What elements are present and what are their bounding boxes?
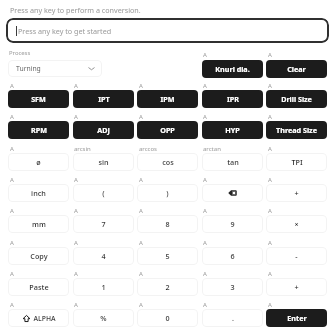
staticText: A (10, 301, 14, 309)
staticText: ADJ (97, 125, 110, 135)
staticText: A (268, 51, 272, 59)
button[interactable]: 4 (73, 247, 134, 265)
button[interactable]: 8 (137, 215, 198, 233)
button[interactable]: 0 (137, 309, 198, 327)
button[interactable]: + (266, 278, 327, 296)
button[interactable]: × (266, 215, 327, 233)
staticText: mm (32, 219, 46, 229)
button[interactable]: ( (73, 184, 134, 202)
staticText: A (203, 176, 207, 184)
staticText: A (74, 207, 78, 215)
staticText: . (232, 313, 234, 323)
button[interactable]: 1 (73, 278, 134, 296)
button[interactable]: ALPHA (8, 309, 69, 327)
staticText: Press any key to get started (18, 26, 112, 36)
button[interactable]: Backspace (202, 184, 263, 202)
button[interactable]: SFM (8, 90, 69, 108)
staticText: 2 (165, 282, 170, 292)
button[interactable]: 6 (202, 247, 263, 265)
button[interactable]: ADJ (73, 121, 134, 139)
button[interactable]: inch (8, 184, 69, 202)
staticText: Knurl dia. (215, 64, 250, 74)
button[interactable]: Copy (8, 247, 69, 265)
staticText: A (74, 176, 78, 184)
staticText: A (268, 145, 272, 153)
staticText: A (74, 239, 78, 247)
staticText: A (139, 270, 143, 278)
button[interactable]: 5 (137, 247, 198, 265)
button[interactable]: IPR (202, 90, 263, 108)
staticText: IPM (160, 94, 175, 104)
button[interactable]: 2 (137, 278, 198, 296)
staticText: A (10, 270, 14, 278)
button[interactable]: % (73, 309, 134, 327)
button[interactable]: 9 (202, 215, 263, 233)
button[interactable]: ) (137, 184, 198, 202)
button[interactable]: tan (202, 153, 263, 171)
button[interactable]: cos (137, 153, 198, 171)
button[interactable]: Turning (8, 60, 102, 77)
staticText: arccos (139, 145, 157, 153)
staticText: inch (31, 188, 46, 198)
staticText: SFM (31, 94, 46, 104)
staticText: arcsin (74, 145, 91, 153)
staticText: IPR (227, 94, 239, 104)
staticText: A (203, 207, 207, 215)
button[interactable]: Paste (8, 278, 69, 296)
staticText: 1 (101, 282, 106, 292)
staticText: OPP (160, 125, 175, 135)
staticText: Turning (16, 64, 41, 73)
staticText: Clear (287, 64, 306, 74)
button[interactable]: 3 (202, 278, 263, 296)
staticText: A (203, 270, 207, 278)
staticText: Process (9, 49, 31, 57)
button[interactable]: sin (73, 153, 134, 171)
staticText: A (268, 176, 272, 184)
staticText: A (74, 270, 78, 278)
staticText: 9 (230, 219, 235, 229)
button[interactable]: OPP (137, 121, 198, 139)
staticText: A (139, 113, 143, 121)
staticText: A (139, 82, 143, 90)
staticText: A (139, 176, 143, 184)
staticText: - (295, 251, 298, 261)
button[interactable]: - (266, 247, 327, 265)
staticText: A (139, 239, 143, 247)
button[interactable]: Knurl dia. (202, 60, 263, 78)
staticText: A (74, 82, 78, 90)
staticText: A (10, 145, 14, 153)
button[interactable]: HYP (202, 121, 263, 139)
button[interactable]: Clear (266, 60, 327, 78)
button[interactable]: + (266, 184, 327, 202)
staticText: RPM (31, 125, 47, 135)
button[interactable]: 7 (73, 215, 134, 233)
staticText: A (10, 176, 14, 184)
staticText: Copy (30, 251, 48, 261)
button[interactable]: TPI (266, 153, 327, 171)
staticText: + (294, 282, 299, 292)
button[interactable]: Drill Size (266, 90, 327, 108)
button[interactable]: IPM (137, 90, 198, 108)
staticText: A (74, 113, 78, 121)
button[interactable]: Press any key to get started (6, 18, 329, 43)
staticText: A (268, 113, 272, 121)
staticText: ( (102, 188, 105, 198)
staticText: Thread Size (276, 125, 317, 135)
button[interactable]: . (202, 309, 263, 327)
staticText: A (139, 301, 143, 309)
staticText: A (268, 207, 272, 215)
button[interactable]: IPT (73, 90, 134, 108)
button[interactable]: mm (8, 215, 69, 233)
staticText: HYP (225, 125, 240, 135)
button[interactable]: RPM (8, 121, 69, 139)
button[interactable]: Enter (266, 309, 327, 327)
button[interactable]: ø (8, 153, 69, 171)
staticText: 6 (230, 251, 235, 261)
staticText: ALPHA (33, 314, 56, 323)
staticText: A (10, 82, 14, 90)
button[interactable]: Thread Size (266, 121, 327, 139)
staticText: A (203, 301, 207, 309)
staticText: tan (227, 157, 239, 167)
staticText: 4 (101, 251, 106, 261)
staticText: 3 (230, 282, 235, 292)
